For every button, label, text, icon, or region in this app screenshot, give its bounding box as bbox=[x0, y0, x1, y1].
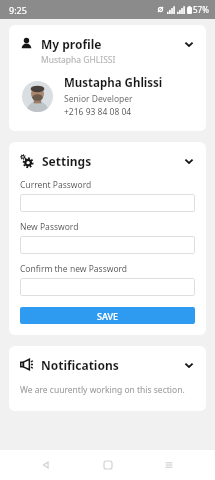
button[interactable]: Mustapha Ghlissi bbox=[9, 69, 206, 131]
staticText: Mustapha GHLISSI bbox=[41, 54, 116, 66]
button[interactable]: Password input bbox=[20, 278, 195, 296]
staticText: New Password bbox=[20, 221, 79, 233]
button[interactable]: Collapse Notifications bbox=[181, 357, 197, 373]
staticText: Notifications bbox=[41, 357, 119, 373]
staticText: Current Password bbox=[20, 179, 92, 191]
button[interactable]: Password input bbox=[20, 236, 195, 254]
button[interactable]: Settings bbox=[9, 142, 206, 172]
staticText: Senior Developer bbox=[64, 93, 133, 105]
staticText: 9:25 bbox=[9, 4, 27, 16]
staticText: Mustapha Ghlissi bbox=[64, 75, 163, 91]
button[interactable]: Password input bbox=[20, 194, 195, 212]
staticText: Confirm the new Password bbox=[20, 263, 128, 275]
staticText: Settings bbox=[42, 153, 92, 169]
button[interactable]: Home bbox=[93, 450, 123, 480]
button[interactable]: Collapse My profile bbox=[181, 36, 197, 52]
button[interactable]: Recent apps bbox=[154, 450, 184, 480]
button[interactable]: Notifications bbox=[9, 346, 206, 376]
button[interactable]: SAVE bbox=[20, 307, 195, 324]
button[interactable]: Collapse Settings bbox=[181, 153, 197, 169]
staticText: My profile bbox=[41, 36, 102, 52]
staticText: SAVE bbox=[97, 310, 119, 322]
button[interactable]: My profile bbox=[9, 25, 206, 69]
button[interactable]: Back bbox=[31, 450, 61, 480]
staticText: 57% bbox=[193, 4, 209, 15]
staticText: +216 93 84 08 04 bbox=[64, 106, 132, 118]
staticText: We are cuurently working on this section… bbox=[20, 384, 185, 396]
